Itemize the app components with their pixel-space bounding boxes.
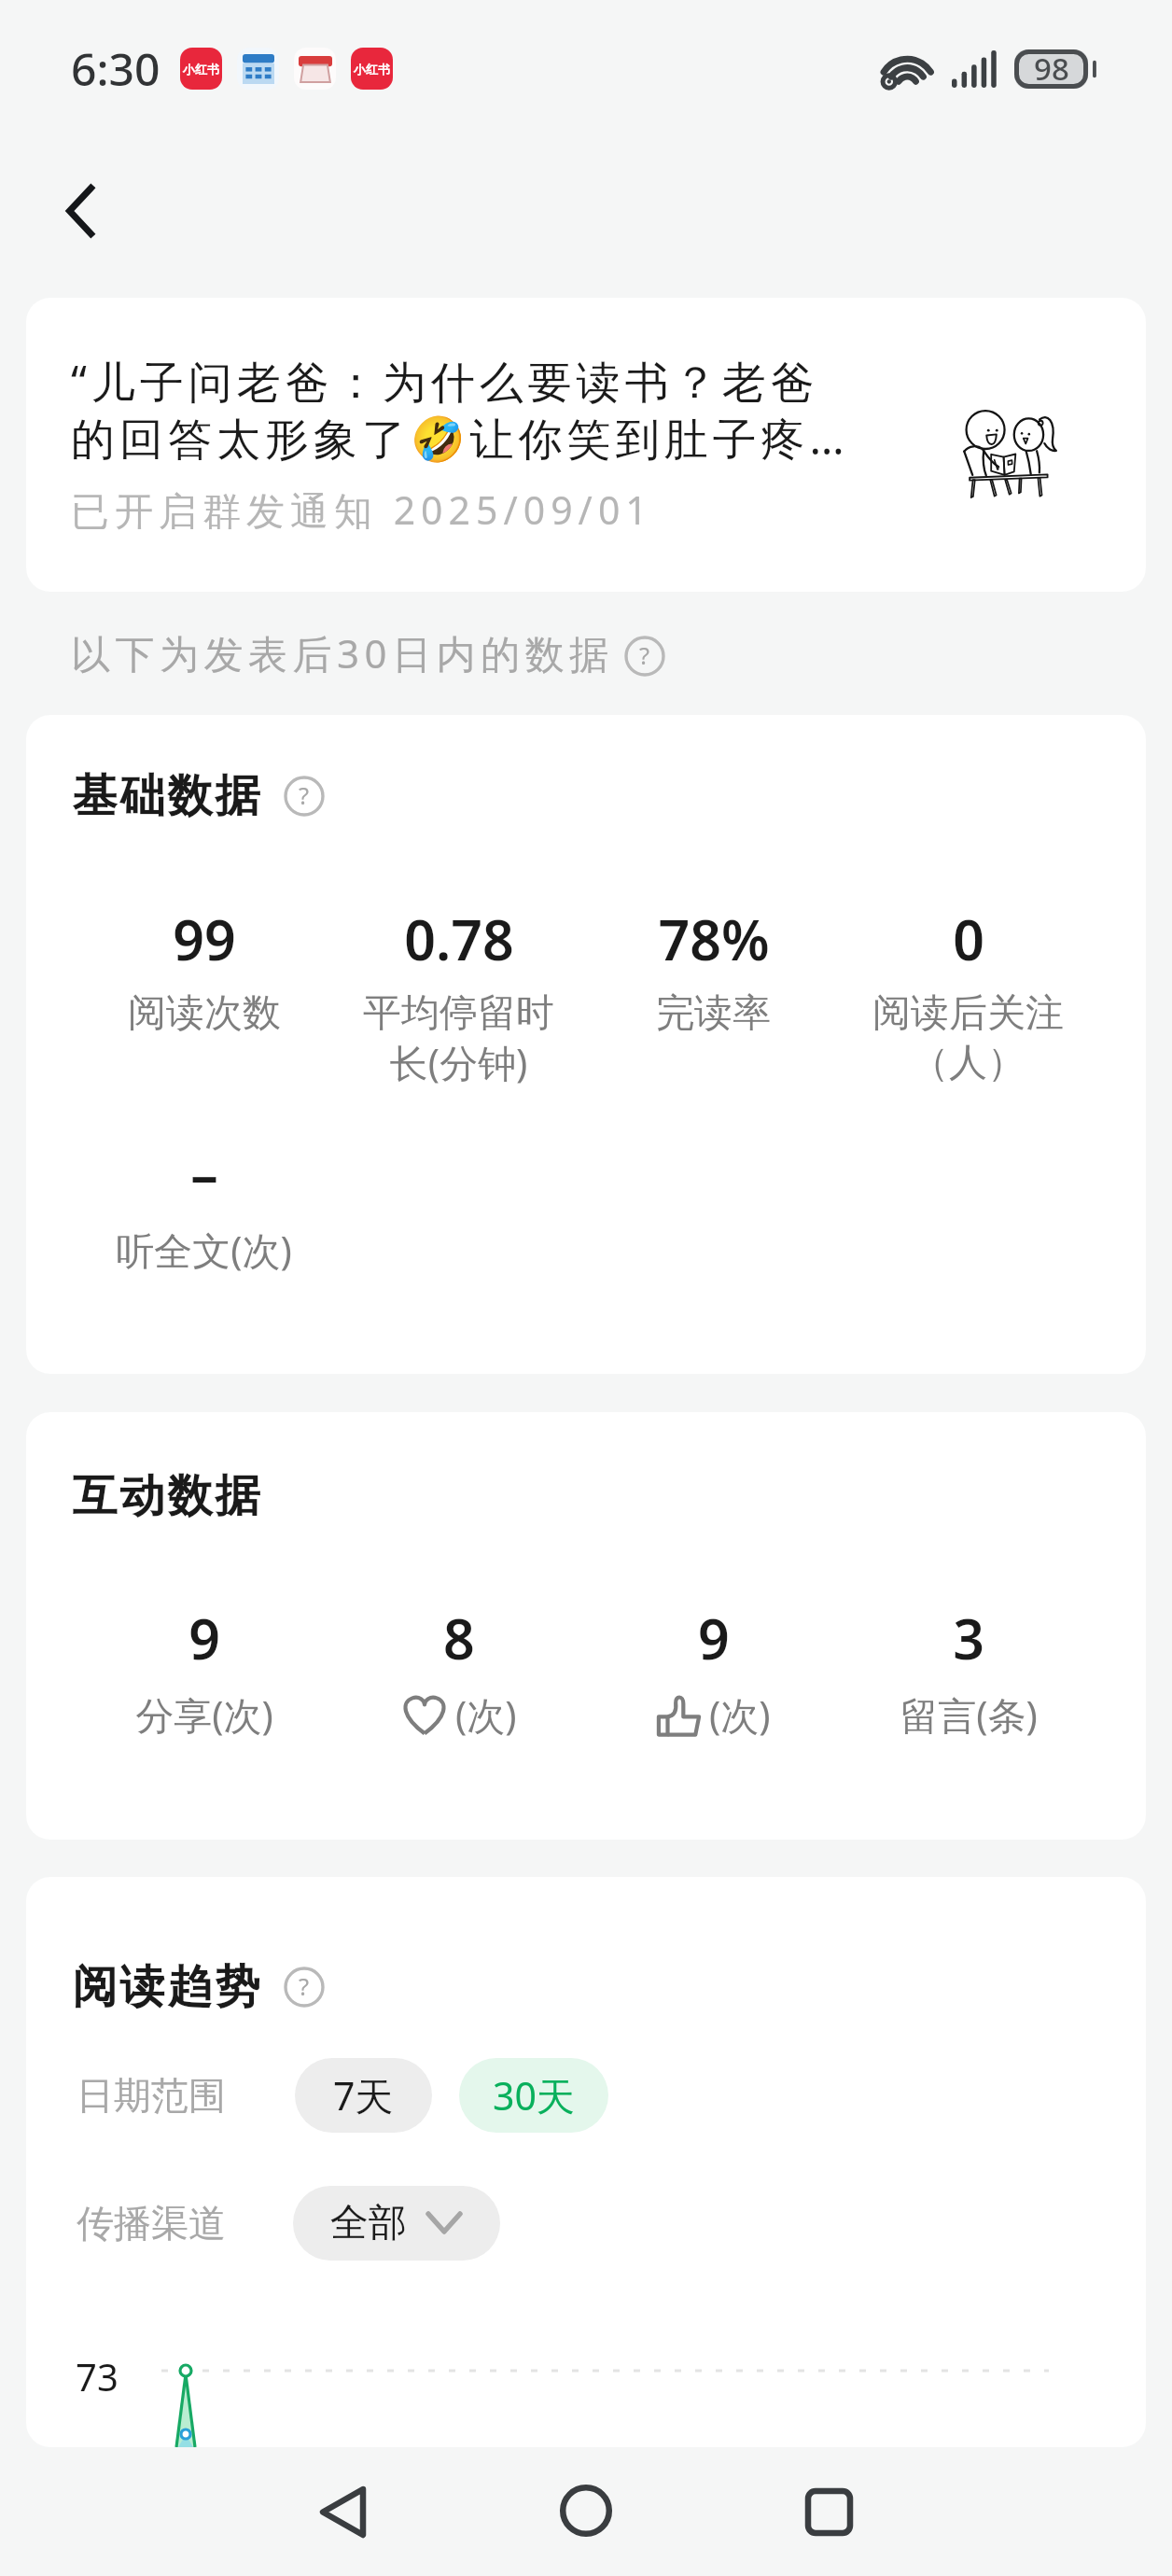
staticText: 分享(次) (135, 1688, 273, 1741)
staticText: ? (299, 779, 310, 812)
staticText: 9 (188, 1601, 220, 1675)
staticText: 互动数据 (71, 1468, 261, 1524)
staticText: 全部 (330, 2199, 407, 2247)
staticText: (次) (709, 1688, 771, 1741)
staticText: 小红书 (183, 62, 219, 77)
staticText: 传播渠道 (77, 2200, 226, 2247)
staticText: 30天 (493, 2069, 575, 2121)
staticText: 留言(条) (900, 1688, 1038, 1741)
staticText: 小红书 (354, 62, 390, 77)
staticText: 0.78 (404, 902, 514, 976)
staticText: 3 (953, 1601, 984, 1675)
staticText: 以下为发表后30日内的数据 (71, 626, 614, 679)
staticText: 完读率 (656, 989, 771, 1038)
button[interactable]: 全部 (293, 2186, 500, 2261)
staticText: 78% (658, 902, 770, 976)
staticText: ? (299, 1970, 310, 2003)
staticText: ? (639, 639, 650, 672)
staticText: – (190, 1136, 218, 1211)
staticText: 基础数据 (71, 768, 261, 824)
staticText: 8 (443, 1601, 475, 1675)
staticText: 6:30 (71, 38, 160, 99)
button[interactable]: Home (535, 2459, 637, 2562)
button[interactable]: “儿子问老爸：为什么要读书？老爸 的回答太形象了🤣让你笑到肚子疼… (26, 298, 1146, 592)
staticText: 7天 (333, 2069, 394, 2121)
staticText: 99 (173, 902, 236, 976)
staticText: 听全文(次) (116, 1224, 292, 1276)
staticText: (次) (455, 1688, 517, 1741)
staticText: 0 (953, 902, 984, 976)
staticText: 98 (1034, 48, 1069, 90)
button[interactable]: Back (291, 2460, 394, 2563)
button[interactable]: 7天 (295, 2058, 432, 2133)
button[interactable]: Back (41, 172, 119, 250)
staticText: 已开启群发通知 2025/09/01 (71, 483, 653, 536)
button[interactable]: Recents (777, 2460, 880, 2563)
staticText: 73 (76, 2351, 119, 2401)
button[interactable]: 30天 (459, 2058, 608, 2133)
staticText: 阅读趋势 (71, 1959, 261, 2015)
staticText: 阅读后关注 （人） (872, 989, 1064, 1086)
staticText: 9 (698, 1601, 730, 1675)
staticText: 日期范围 (77, 2072, 226, 2119)
staticText: 阅读次数 (128, 989, 281, 1038)
staticText: “儿子问老爸：为什么要读书？老爸 的回答太形象了🤣让你笑到肚子疼… (71, 351, 849, 468)
staticText: 平均停留时 长(分钟) (363, 989, 554, 1088)
